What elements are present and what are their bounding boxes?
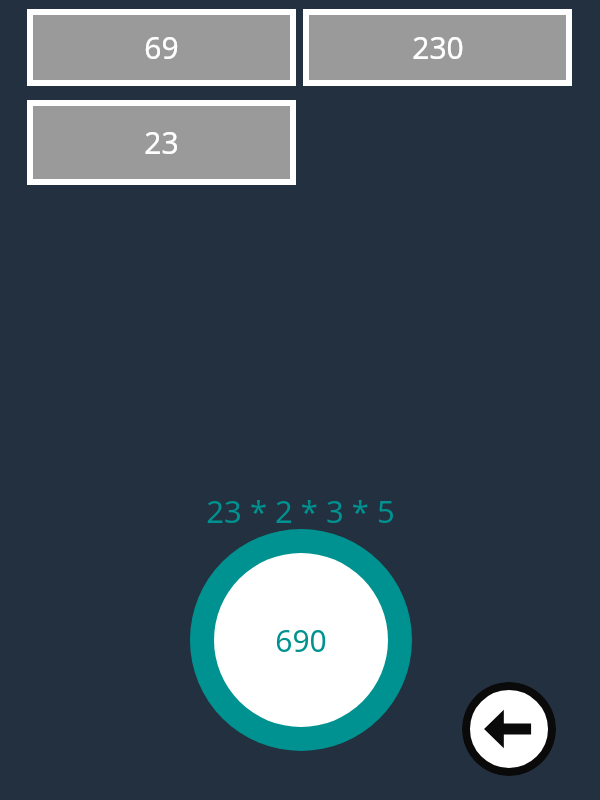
staticText: 230 bbox=[412, 27, 464, 68]
staticText: 69 bbox=[144, 27, 179, 68]
button[interactable]: Back bbox=[462, 682, 556, 776]
button[interactable]: 69 bbox=[27, 9, 296, 86]
button[interactable]: 690 bbox=[190, 529, 412, 751]
staticText: 23 bbox=[144, 122, 179, 163]
button[interactable]: 230 bbox=[303, 9, 572, 86]
staticText: 690 bbox=[275, 620, 327, 661]
staticText: 23 * 2 * 3 * 5 bbox=[206, 490, 395, 532]
button[interactable]: 23 bbox=[27, 100, 296, 185]
